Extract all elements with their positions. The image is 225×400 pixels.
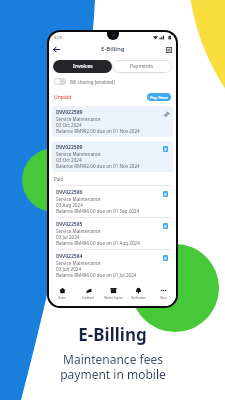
staticText: Service Maintenance [56, 196, 101, 202]
staticText: 03 Oct 2024 [56, 122, 82, 128]
button[interactable]: Filter [163, 44, 174, 55]
staticText: 03 Oct 2024 [56, 157, 82, 163]
staticText: Service Maintenance [56, 228, 101, 234]
staticText: 03 Jun 2024 [56, 266, 82, 272]
staticText: Balance RM496.00 due on 01 Sep 2024 [56, 208, 140, 214]
button[interactable]: INV022584 [49, 250, 176, 281]
staticText: Notification [131, 296, 146, 300]
staticText: INV022589 [56, 144, 83, 151]
staticText: Balance RM992.00 due on 01 Nov 2024 [56, 128, 140, 134]
staticText: Market Inquiry [104, 296, 123, 300]
staticText: Payments [130, 63, 154, 70]
staticText: 03 Aug 2024 [56, 202, 83, 208]
staticText: INV022585 [56, 221, 83, 228]
button[interactable]: Market Inquiry [101, 287, 126, 301]
staticText: Balance RM496.00 due on 01 Aug 2024 [56, 240, 140, 246]
button[interactable]: Notification [126, 287, 151, 301]
staticText: 03 Jul 2024 [56, 234, 80, 240]
staticText: INV022584 [56, 253, 83, 260]
staticText: E-Billing [78, 323, 147, 346]
button[interactable]: Back [51, 44, 62, 55]
button[interactable]: Bill sharing toggle [54, 78, 66, 85]
staticText: Feedback [82, 296, 94, 300]
staticText: 9:00 [54, 35, 62, 40]
staticText: Service Maintenance [56, 116, 101, 122]
staticText: Balance RM992.00 due on 01 Nov 2024 [56, 163, 140, 169]
staticText: Balance RM496.00 due on 01 Jul 2024 [56, 272, 137, 278]
staticText: Maintenance fees payment in mobile [60, 351, 166, 382]
staticText: Invoices [73, 63, 93, 70]
button[interactable]: More [151, 287, 176, 301]
button[interactable]: Invoices [53, 60, 112, 73]
staticText: INV022589 [56, 109, 83, 116]
button[interactable]: INV022585 [49, 218, 176, 249]
staticText: More [160, 296, 167, 300]
staticText: E-Billing [101, 45, 125, 53]
button[interactable]: INV022589 [52, 106, 173, 137]
button[interactable]: Pay Now [147, 93, 171, 101]
staticText: Paid [54, 176, 64, 182]
staticText: Bill sharing [enabled] [70, 79, 115, 85]
staticText: Home [58, 296, 66, 300]
staticText: Service Maintenance [56, 151, 101, 157]
staticText: Pay Now [150, 94, 168, 100]
staticText: Unpaid [54, 94, 72, 101]
button[interactable]: Feedback [75, 287, 101, 301]
button[interactable]: INV022586 [49, 186, 176, 217]
button[interactable]: Payments [112, 60, 172, 73]
staticText: Service Maintenance [56, 260, 101, 266]
button[interactable]: Home [49, 287, 75, 301]
staticText: INV022586 [56, 189, 83, 196]
button[interactable]: INV022589 [52, 141, 173, 172]
